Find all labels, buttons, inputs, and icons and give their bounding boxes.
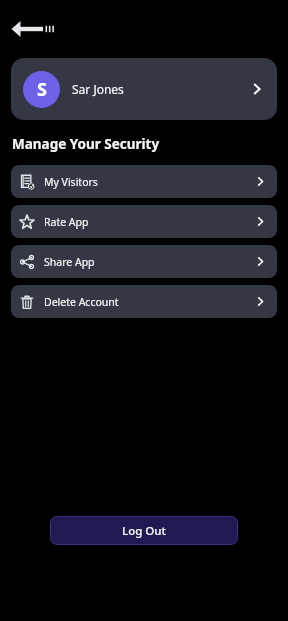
button[interactable]: Share App — [11, 245, 277, 278]
staticText: Rate App — [44, 215, 89, 229]
staticText: Log Out — [122, 523, 166, 539]
staticText: My Visitors — [44, 175, 98, 189]
staticText: Sar Jones — [72, 81, 124, 97]
staticText: Delete Account — [44, 295, 119, 309]
button[interactable]: Back — [10, 16, 56, 42]
button[interactable]: S — [11, 58, 277, 120]
button[interactable]: Rate App — [11, 205, 277, 238]
staticText: S — [37, 77, 47, 102]
button[interactable]: Delete Account — [11, 285, 277, 318]
staticText: Share App — [44, 255, 95, 269]
staticText: Manage Your Security — [12, 135, 160, 153]
button[interactable]: My Visitors — [11, 165, 277, 198]
button[interactable]: Log Out — [50, 516, 238, 545]
